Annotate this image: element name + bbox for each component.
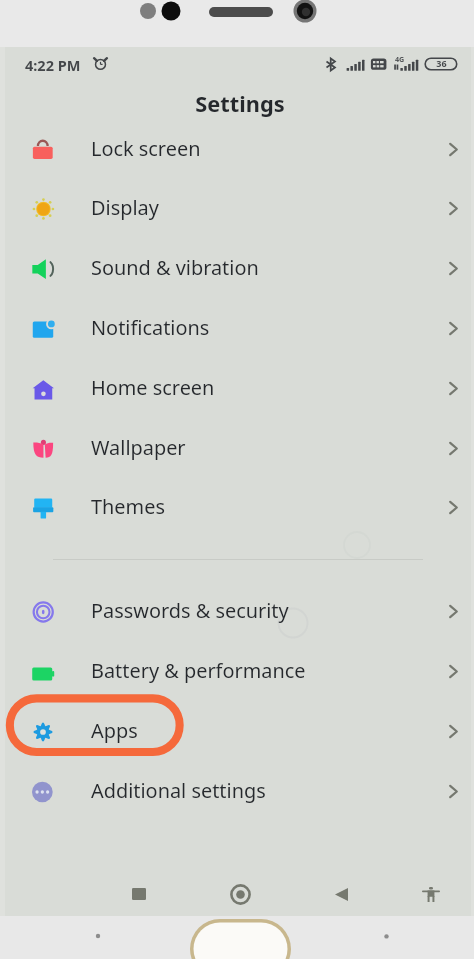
button[interactable]: Themes	[5, 478, 471, 537]
staticText: Notifications	[91, 314, 210, 341]
staticText: Sound & vibration	[91, 254, 259, 281]
staticText: Themes	[91, 493, 165, 520]
button[interactable]: Display	[5, 179, 471, 238]
button[interactable]: Additional settings	[5, 762, 471, 821]
staticText: Battery & performance	[91, 657, 306, 684]
staticText: Display	[91, 194, 159, 221]
staticText: Settings	[195, 89, 285, 117]
button[interactable]: Wallpaper	[5, 419, 471, 478]
staticText: 4:22 PM	[25, 55, 81, 75]
button[interactable]: Back	[319, 872, 363, 916]
button[interactable]: Lock screen	[5, 120, 471, 179]
staticText: Home screen	[91, 374, 215, 401]
button[interactable]: Passwords & security	[5, 582, 471, 641]
button[interactable]: Notifications	[5, 299, 471, 358]
staticText: 36	[436, 57, 447, 69]
button[interactable]: Recent apps	[117, 872, 161, 916]
button[interactable]: Accessibility	[409, 872, 453, 916]
button[interactable]: Home	[218, 872, 262, 916]
button[interactable]: Apps	[5, 702, 471, 761]
staticText: Apps	[91, 717, 138, 744]
button[interactable]: Sound & vibration	[5, 239, 471, 298]
staticText: 4G	[395, 54, 405, 64]
button[interactable]: Home screen	[5, 359, 471, 418]
staticText: Passwords & security	[91, 597, 289, 624]
staticText: Additional settings	[91, 777, 266, 804]
staticText: Lock screen	[91, 135, 201, 162]
staticText: Wallpaper	[91, 434, 186, 461]
button[interactable]: Battery & performance	[5, 642, 471, 701]
